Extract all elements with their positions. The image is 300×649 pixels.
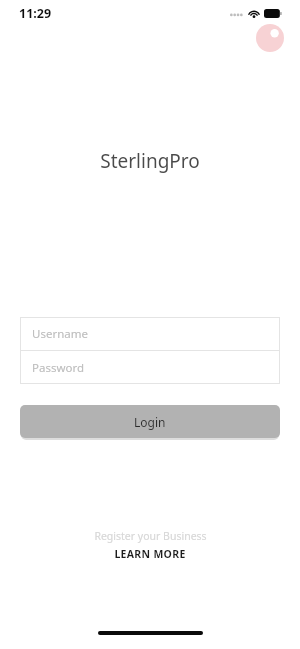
staticText: SterlingPro: [0, 148, 300, 174]
button[interactable]: Profile: [256, 24, 284, 52]
staticText: LEARN MORE: [114, 547, 186, 561]
staticText: Password: [32, 360, 85, 376]
button[interactable]: Login: [20, 405, 280, 438]
staticText: Username: [32, 326, 88, 342]
staticText: Register your Business: [94, 529, 207, 543]
staticText: 11:29: [19, 5, 52, 22]
button[interactable]: Password: [20, 351, 280, 384]
staticText: Login: [134, 414, 166, 430]
button[interactable]: LEARN MORE: [106, 546, 194, 562]
button[interactable]: Register your Business: [86, 528, 215, 544]
button[interactable]: Username: [20, 317, 280, 350]
